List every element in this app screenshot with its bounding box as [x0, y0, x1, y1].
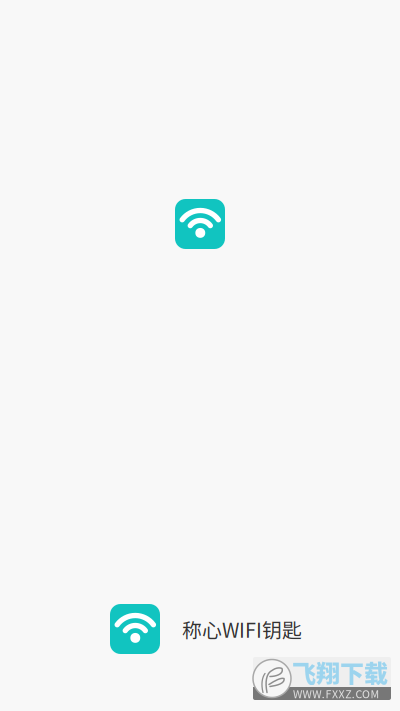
- staticText: 飞翔下载: [292, 655, 388, 689]
- staticText: WWW.FXXZ.COM: [293, 686, 380, 701]
- staticText: 称心WIFI钥匙: [182, 615, 302, 643]
- button[interactable]: 称心WIFI钥匙: [175, 199, 225, 249]
- button[interactable]: 称心WIFI钥匙: [110, 604, 302, 654]
